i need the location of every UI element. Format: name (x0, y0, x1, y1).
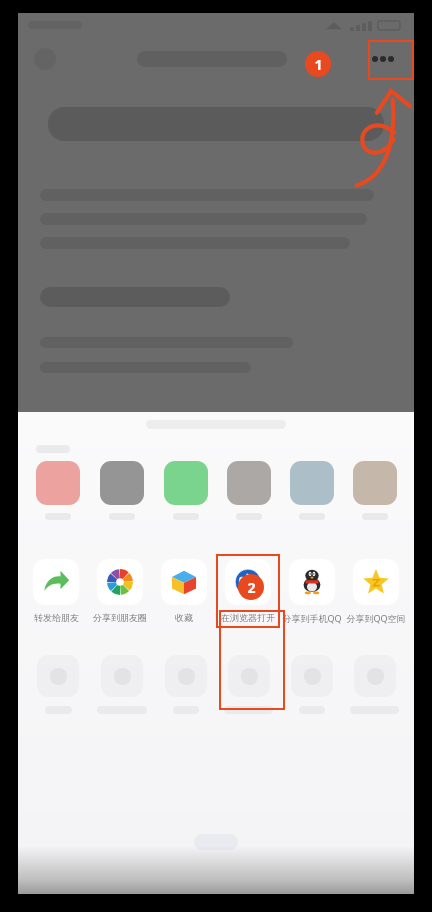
button[interactable]: 在浏览器打开 (216, 554, 280, 628)
staticText: 1 (314, 55, 323, 74)
button[interactable]: 转发给朋友 (24, 554, 88, 628)
staticText: 2 (247, 578, 256, 597)
button[interactable] (280, 461, 343, 520)
button[interactable] (154, 461, 217, 520)
button[interactable]: 分享到朋友圈 (88, 554, 152, 628)
button[interactable] (154, 655, 217, 714)
button[interactable] (90, 461, 154, 520)
button[interactable]: 分享到QQ空间 (344, 554, 408, 629)
button[interactable] (217, 461, 280, 520)
staticText: 分享到手机QQ (282, 612, 342, 624)
button[interactable]: Back (32, 46, 58, 72)
staticText: 分享到QQ空间 (346, 612, 406, 624)
button[interactable] (343, 655, 406, 714)
button[interactable] (343, 461, 406, 520)
button[interactable] (26, 655, 90, 714)
button[interactable] (90, 655, 154, 714)
button[interactable] (280, 655, 343, 714)
button[interactable] (26, 461, 90, 520)
button[interactable]: More options (366, 45, 400, 73)
staticText: 分享到朋友圈 (93, 612, 147, 623)
button[interactable] (217, 655, 280, 714)
staticText: 收藏 (175, 612, 193, 623)
button[interactable]: 分享到手机QQ (280, 554, 344, 629)
staticText: 在浏览器打开 (221, 612, 275, 623)
button[interactable]: 收藏 (152, 554, 216, 628)
staticText: 转发给朋友 (34, 612, 79, 623)
